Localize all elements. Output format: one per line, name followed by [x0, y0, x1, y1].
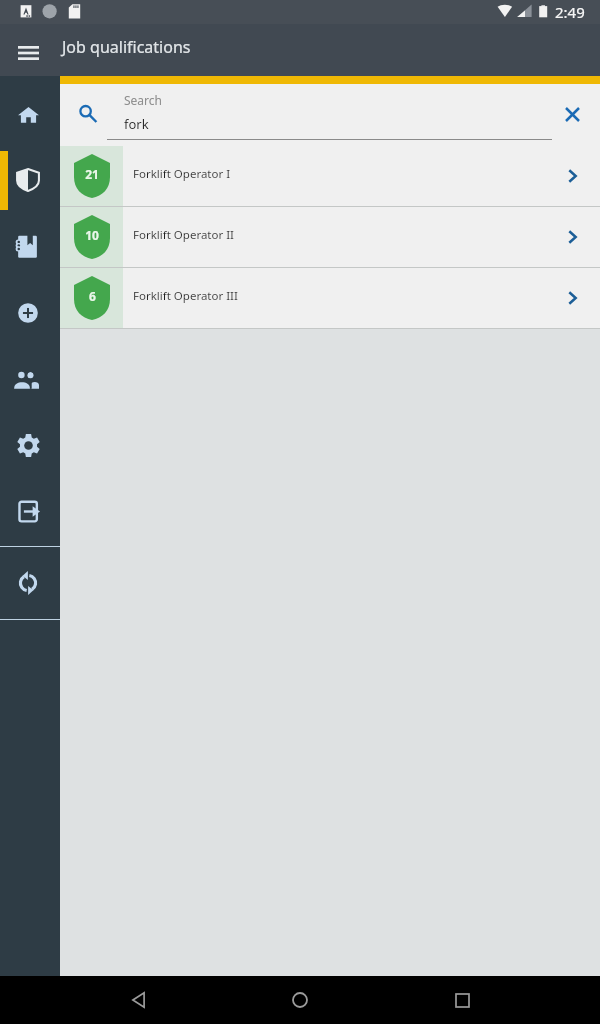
staticText: 21 [85, 166, 99, 182]
staticText: Forklift Operator III [133, 288, 544, 304]
button[interactable]: 10 [60, 207, 600, 267]
button[interactable]: Sync [0, 547, 60, 619]
button[interactable]: Add new [0, 279, 60, 346]
button[interactable]: Clear search [544, 84, 600, 146]
staticText: fork [124, 115, 149, 133]
staticText: 6 [89, 288, 96, 304]
staticText: 10 [85, 227, 99, 243]
button[interactable]: Qualifications [0, 147, 60, 213]
button[interactable]: Recent apps [427, 976, 497, 1024]
button[interactable]: Sign out [0, 478, 60, 544]
staticText: Search [124, 92, 162, 108]
button[interactable]: Back [103, 976, 173, 1024]
staticText: Job qualifications [62, 36, 191, 58]
staticText: 2:49 [555, 2, 585, 22]
staticText: Forklift Operator II [133, 227, 544, 243]
button[interactable]: People [0, 346, 60, 412]
button[interactable]: Settings [0, 412, 60, 478]
button[interactable]: 6 [60, 268, 600, 328]
button[interactable]: Home [265, 976, 335, 1024]
button[interactable]: Open navigation menu [0, 24, 56, 76]
staticText: Forklift Operator I [133, 166, 544, 182]
button[interactable]: Records [0, 213, 60, 279]
button[interactable]: 21 [60, 146, 600, 206]
button[interactable]: Search [60, 84, 108, 146]
button[interactable]: Home [0, 81, 60, 147]
